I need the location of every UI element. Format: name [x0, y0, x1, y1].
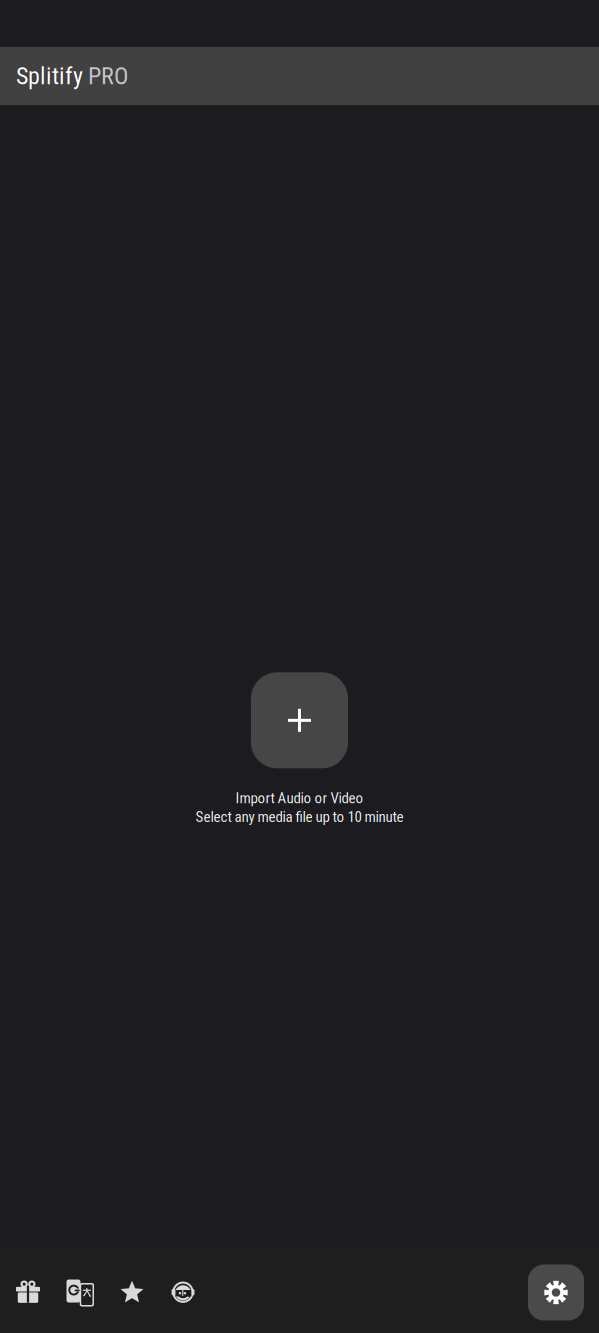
button[interactable]: Support: [158, 1248, 208, 1333]
staticText: Splitify: [16, 62, 83, 90]
button[interactable]: Settings: [528, 1262, 584, 1318]
staticText: Select any media file up to 10 minute: [195, 808, 403, 826]
staticText: Import Audio or Video: [235, 789, 363, 807]
button[interactable]: Rate the app: [106, 1248, 158, 1333]
staticText: PRO: [83, 62, 128, 90]
button[interactable]: Translate: [54, 1248, 106, 1333]
button[interactable]: Import Audio or Video: [195, 672, 403, 826]
button[interactable]: Gifts: [2, 1248, 54, 1333]
